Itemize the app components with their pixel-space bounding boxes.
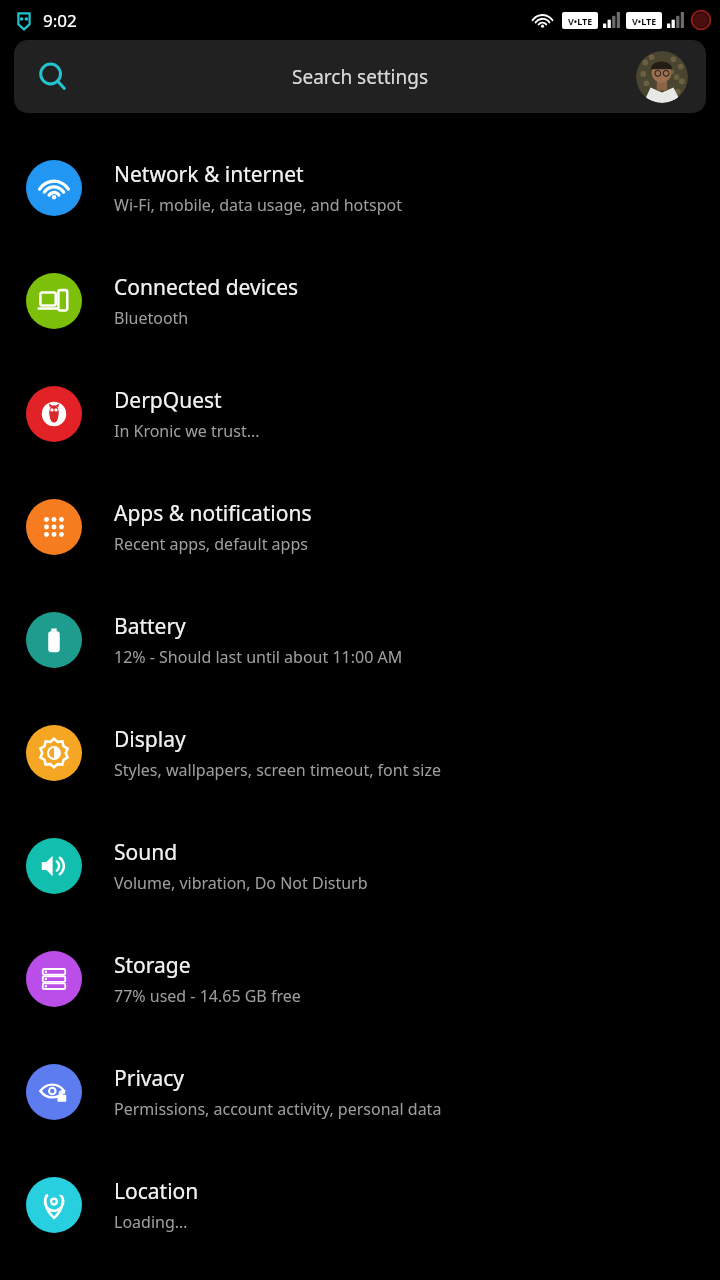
staticText: Volume, vibration, Do Not Disturb: [114, 872, 368, 894]
staticText: Wi-Fi, mobile, data usage, and hotspot: [114, 194, 402, 216]
button[interactable]: Network & internet: [0, 131, 720, 244]
staticText: Location: [114, 1177, 199, 1206]
other: Search: [38, 62, 68, 92]
staticText: Display: [114, 725, 186, 754]
button[interactable]: Sound: [0, 809, 720, 922]
staticText: In Kronic we trust...: [114, 420, 260, 442]
staticText: Storage: [114, 951, 191, 980]
staticText: 9:02: [43, 9, 77, 32]
staticText: V•LTE: [632, 15, 657, 27]
staticText: Permissions, account activity, personal …: [114, 1098, 442, 1120]
button[interactable]: Connected devices: [0, 244, 720, 357]
button[interactable]: Location: [0, 1148, 720, 1261]
button[interactable]: Privacy: [0, 1035, 720, 1148]
staticText: Search settings: [292, 64, 429, 90]
button[interactable]: Account: [636, 51, 688, 103]
staticText: 77% used - 14.65 GB free: [114, 985, 301, 1007]
staticText: Bluetooth: [114, 307, 189, 329]
staticText: Connected devices: [114, 273, 299, 302]
button[interactable]: Battery: [0, 583, 720, 696]
staticText: Apps & notifications: [114, 499, 312, 528]
staticText: Styles, wallpapers, screen timeout, font…: [114, 759, 441, 781]
button[interactable]: Display: [0, 696, 720, 809]
staticText: Battery: [114, 612, 186, 641]
button[interactable]: Apps & notifications: [0, 470, 720, 583]
staticText: 12% - Should last until about 11:00 AM: [114, 646, 403, 668]
staticText: Network & internet: [114, 160, 304, 189]
staticText: Loading…: [114, 1211, 188, 1233]
button[interactable]: DerpQuest: [0, 357, 720, 470]
staticText: Recent apps, default apps: [114, 533, 308, 555]
staticText: DerpQuest: [114, 386, 222, 415]
button[interactable]: Search: [14, 40, 706, 113]
button[interactable]: Storage: [0, 922, 720, 1035]
staticText: V•LTE: [568, 15, 593, 27]
staticText: Sound: [114, 838, 178, 867]
staticText: Privacy: [114, 1064, 185, 1093]
